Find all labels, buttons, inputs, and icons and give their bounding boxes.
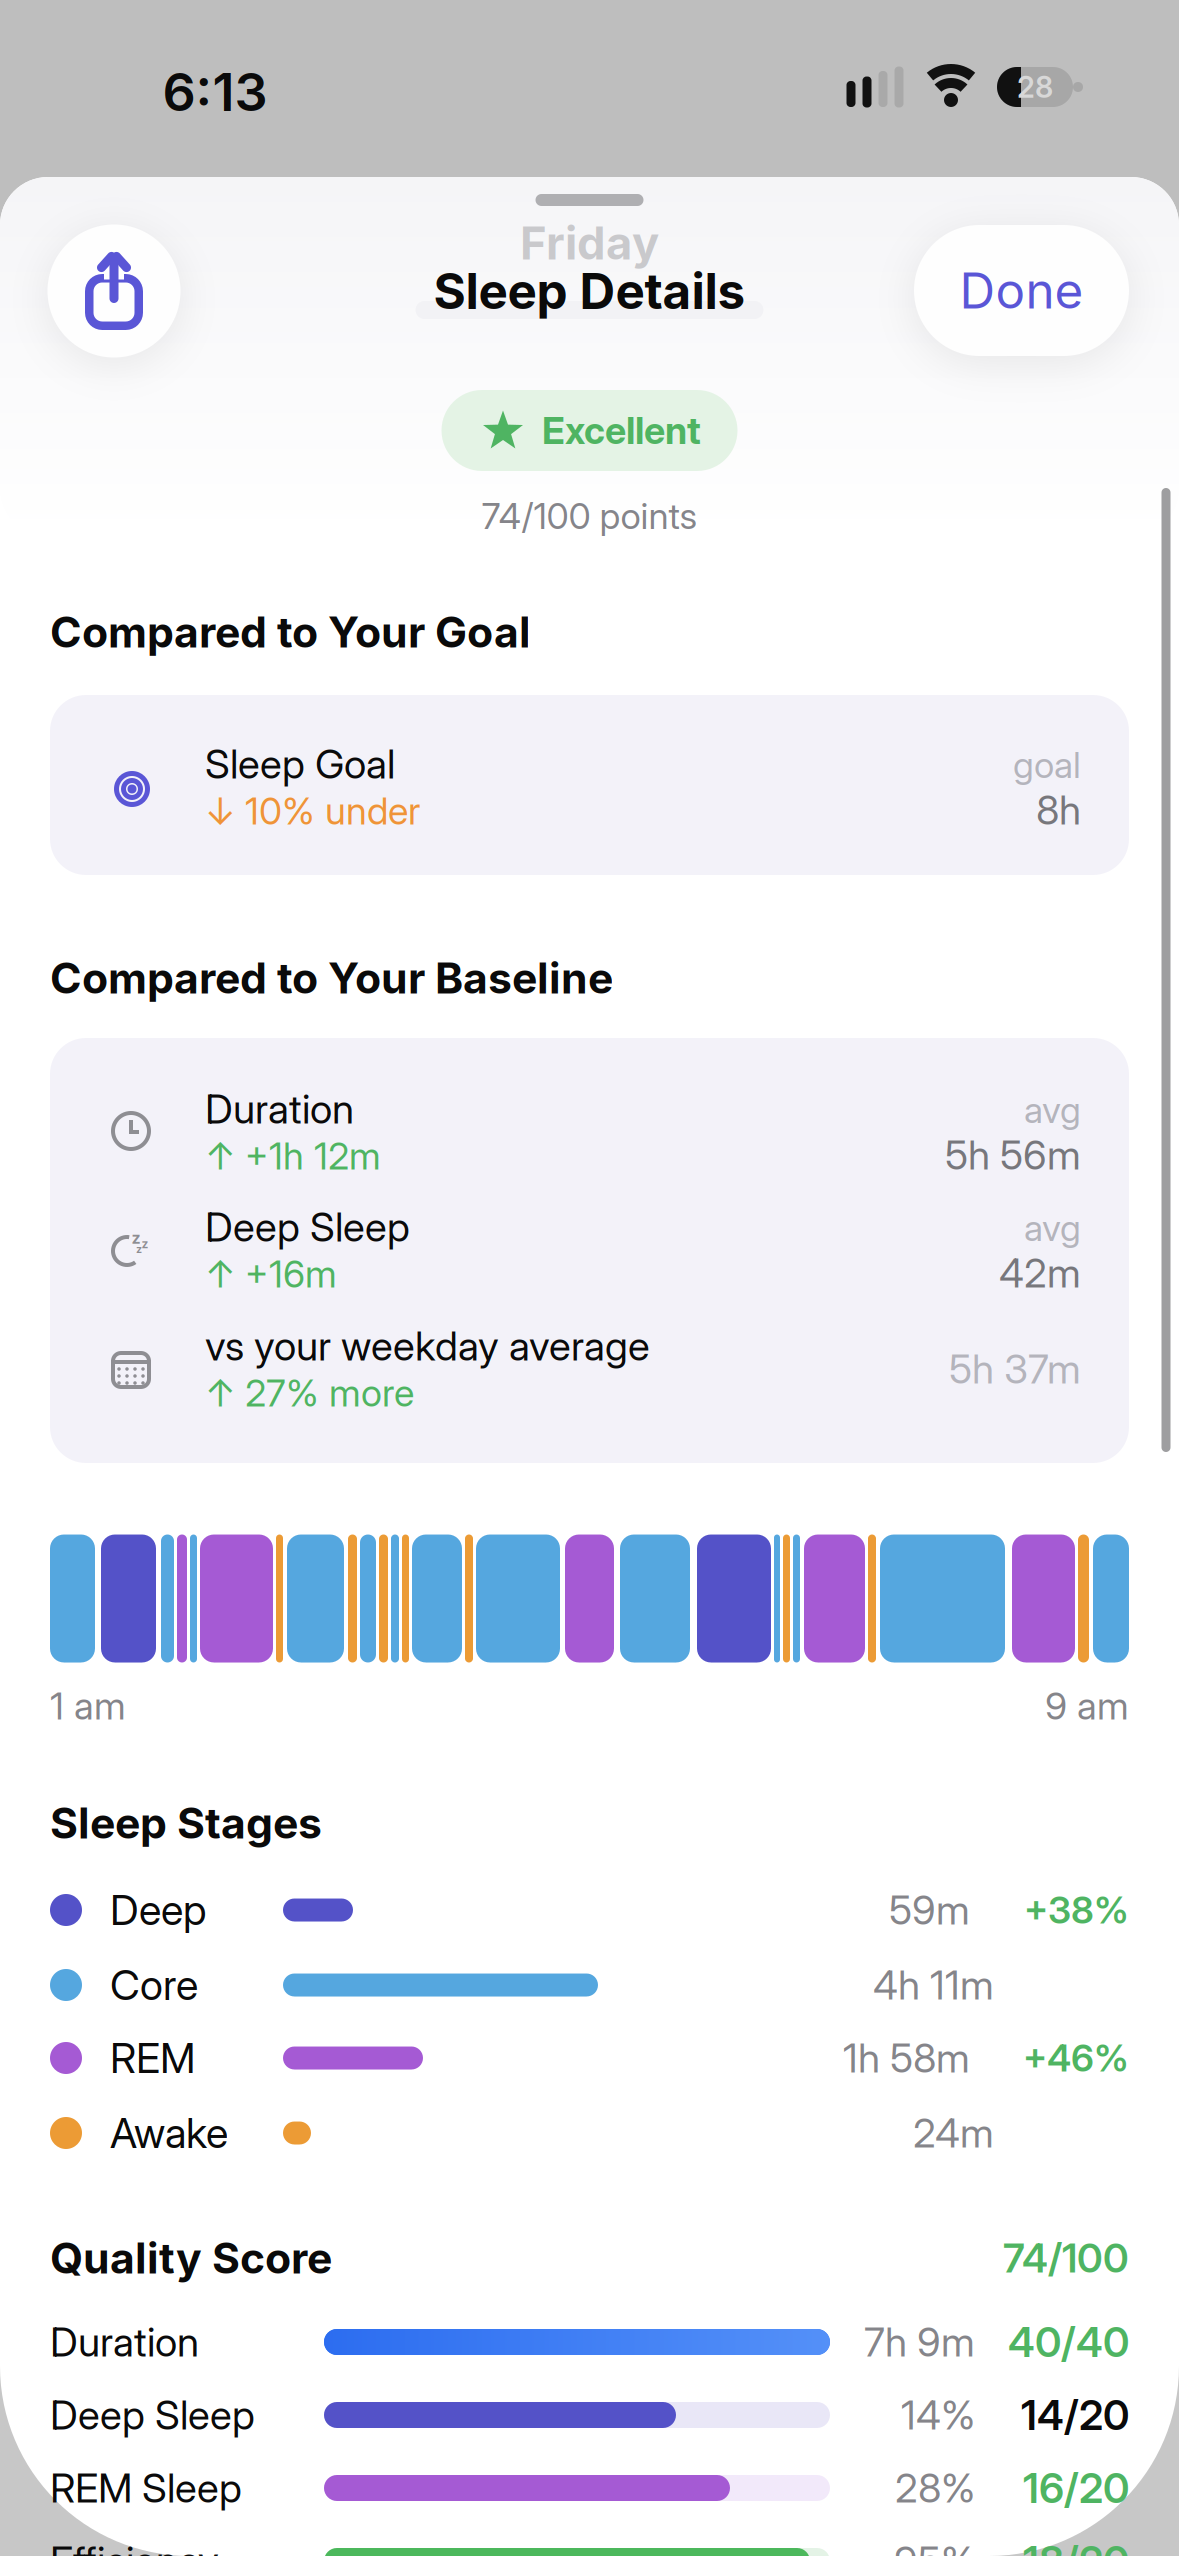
- staticText: Quality Score: [50, 2233, 332, 2283]
- staticText: Duration: [50, 2318, 199, 2366]
- staticText: 7h 9m: [864, 2318, 975, 2366]
- staticText: 1 am: [50, 1684, 126, 1728]
- staticText: 24m: [913, 2109, 994, 2157]
- staticText: 59m: [889, 1886, 970, 1934]
- staticText: Done: [959, 261, 1083, 320]
- staticText: ↑ +1h 12m: [205, 1134, 381, 1178]
- staticText: vs your weekday average: [205, 1322, 650, 1370]
- staticText: 4h 11m: [873, 1961, 994, 2009]
- staticText: 40/40: [1008, 2318, 1129, 2366]
- staticText: Deep Sleep: [205, 1203, 410, 1251]
- staticText: 74/100: [1003, 2234, 1129, 2282]
- staticText: Excellent: [542, 408, 701, 452]
- staticText: z: [136, 1243, 142, 1255]
- staticText: 42m: [999, 1249, 1081, 1297]
- staticText: z: [141, 1237, 148, 1251]
- staticText: goal: [1013, 744, 1081, 786]
- staticText: 74/100 points: [481, 495, 697, 537]
- staticText: Compared to Your Baseline: [50, 953, 613, 1003]
- staticText: Friday: [520, 216, 659, 270]
- staticText: 18/20: [1023, 2537, 1129, 2556]
- staticText: 6:13: [162, 61, 267, 123]
- staticText: Awake: [110, 2109, 228, 2157]
- staticText: Deep: [110, 1886, 206, 1934]
- staticText: 14/20: [1021, 2391, 1129, 2439]
- staticText: ↑ +16m: [205, 1252, 337, 1296]
- staticText: 5h 56m: [945, 1131, 1081, 1179]
- staticText: REM: [110, 2034, 196, 2082]
- staticText: REM Sleep: [50, 2464, 242, 2512]
- staticText: Duration: [205, 1085, 354, 1133]
- staticText: 5h 37m: [949, 1345, 1081, 1393]
- staticText: 28: [1017, 70, 1053, 104]
- staticText: Sleep Stages: [50, 1798, 322, 1848]
- staticText: avg: [1024, 1207, 1081, 1249]
- staticText: 14%: [901, 2391, 975, 2439]
- staticText: +38%: [1024, 1888, 1129, 1932]
- button[interactable]: Share: [47, 224, 180, 357]
- staticText: Deep Sleep: [50, 2391, 255, 2439]
- staticText: Efficiency: [50, 2537, 219, 2556]
- staticText: z: [131, 1229, 140, 1247]
- staticText: 16/20: [1023, 2464, 1129, 2512]
- staticText: +46%: [1023, 2036, 1129, 2080]
- staticText: 8h: [1036, 786, 1081, 834]
- staticText: Core: [110, 1961, 198, 2009]
- staticText: 1h 58m: [843, 2034, 970, 2082]
- button[interactable]: Done: [914, 225, 1129, 356]
- staticText: Compared to Your Goal: [50, 607, 531, 657]
- staticText: ↑ 27% more: [205, 1371, 414, 1415]
- staticText: 28%: [895, 2464, 975, 2512]
- staticText: 9 am: [1045, 1684, 1129, 1728]
- staticText: avg: [1024, 1089, 1081, 1131]
- staticText: Sleep Goal: [205, 740, 395, 788]
- staticText: Sleep Details: [433, 262, 745, 320]
- staticText: 95%: [894, 2537, 975, 2556]
- staticText: ↓ 10% under: [205, 789, 420, 833]
